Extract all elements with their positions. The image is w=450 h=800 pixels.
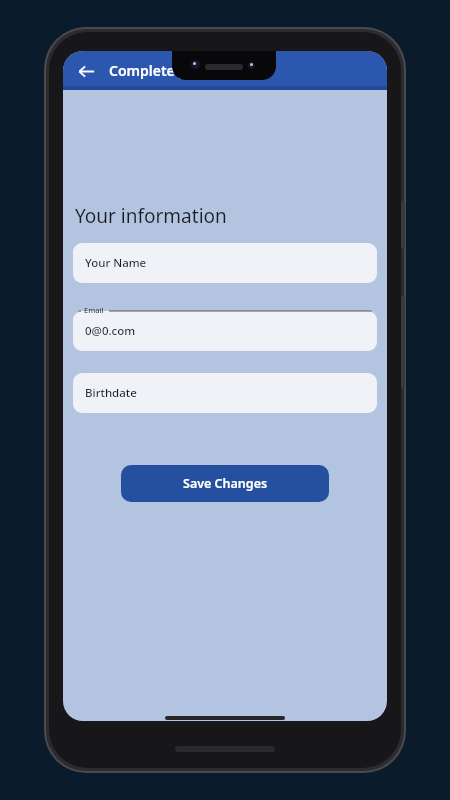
staticText: Your information xyxy=(75,203,227,229)
staticText: Birthdate xyxy=(85,385,137,401)
staticText: Save Changes xyxy=(183,475,268,492)
button[interactable]: Back xyxy=(69,54,103,88)
button[interactable]: Your Name xyxy=(73,243,377,283)
button[interactable]: 0@0.com xyxy=(73,311,377,351)
staticText: Your Name xyxy=(85,255,147,271)
button[interactable]: Save Changes xyxy=(121,465,329,502)
staticText: Email xyxy=(84,305,104,315)
staticText: 0@0.com xyxy=(85,323,136,339)
staticText: Complete profile xyxy=(109,61,223,80)
button[interactable]: Birthdate xyxy=(73,373,377,413)
